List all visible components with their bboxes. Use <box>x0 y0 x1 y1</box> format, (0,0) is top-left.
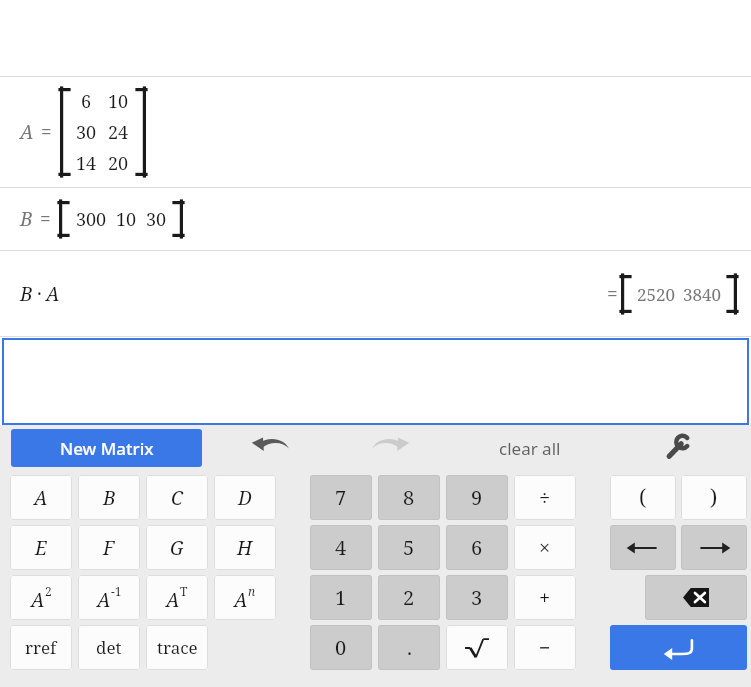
staticText: T <box>180 583 188 599</box>
button[interactable]: 8 <box>378 475 440 520</box>
button[interactable]: . <box>378 625 440 670</box>
button[interactable]: ÷ <box>514 475 576 520</box>
staticText: 9 <box>471 484 483 511</box>
button[interactable]: 9 <box>446 475 508 520</box>
button[interactable]: Settings <box>650 429 704 467</box>
staticText: 1 <box>335 584 347 611</box>
staticText: det <box>96 636 122 659</box>
staticText: A <box>234 587 248 613</box>
button[interactable]: clear all <box>470 429 590 467</box>
button[interactable]: Redo <box>362 429 418 467</box>
button[interactable]: Move left <box>610 525 676 570</box>
button[interactable]: rref <box>10 625 72 670</box>
staticText: -1 <box>111 583 122 599</box>
button[interactable]: det <box>78 625 140 670</box>
button[interactable]: A <box>10 475 72 520</box>
button[interactable]: 3 <box>446 575 508 620</box>
staticText: 4 <box>335 534 347 561</box>
staticText: B <box>103 485 116 511</box>
staticText: 30 <box>76 120 97 145</box>
button[interactable]: 0 <box>310 625 372 670</box>
button[interactable]: ) <box>681 475 747 520</box>
button[interactable]: F <box>78 525 140 570</box>
staticText: + <box>539 584 551 611</box>
staticText: . <box>407 634 412 661</box>
staticText: New Matrix <box>60 437 154 460</box>
staticText: 14 <box>76 151 97 176</box>
button[interactable]: 6 <box>446 525 508 570</box>
button[interactable]: A <box>78 575 140 620</box>
button[interactable]: C <box>146 475 208 520</box>
staticText: 24 <box>108 120 129 145</box>
staticText: D <box>238 485 252 511</box>
button[interactable]: Undo <box>243 429 299 467</box>
staticText: 0 <box>335 634 347 661</box>
staticText: 10 <box>108 89 129 114</box>
staticText: ( <box>639 483 647 512</box>
staticText: A <box>46 281 60 307</box>
staticText: 5 <box>403 534 415 561</box>
button[interactable]: trace <box>146 625 208 670</box>
staticText: = <box>40 206 51 232</box>
staticText: = <box>41 119 52 145</box>
staticText: H <box>237 535 253 561</box>
staticText: F <box>103 535 115 561</box>
button[interactable]: 2 <box>378 575 440 620</box>
staticText: 3 <box>471 584 483 611</box>
staticText: n <box>248 583 256 599</box>
staticText: ÷ <box>539 484 551 511</box>
staticText: 10 <box>116 207 137 232</box>
button[interactable]: Move right <box>681 525 747 570</box>
staticText: 6 <box>81 89 92 114</box>
button[interactable]: 5 <box>378 525 440 570</box>
staticText: A <box>20 119 34 145</box>
staticText: 30 <box>146 207 167 232</box>
staticText: C <box>171 485 183 511</box>
button[interactable]: Square root <box>446 625 508 670</box>
staticText: − <box>539 634 551 661</box>
staticText: 300 <box>76 207 107 232</box>
button[interactable]: G <box>146 525 208 570</box>
button[interactable]: 1 <box>310 575 372 620</box>
button[interactable]: Backspace <box>645 575 747 620</box>
button[interactable]: D <box>214 475 276 520</box>
staticText: ) <box>710 483 718 512</box>
button[interactable]: ( <box>610 475 676 520</box>
staticText: rref <box>25 636 57 659</box>
button[interactable]: A <box>10 575 72 620</box>
staticText: · <box>37 281 42 307</box>
button[interactable]: A <box>214 575 276 620</box>
button[interactable]: Enter <box>610 625 747 670</box>
staticText: 7 <box>335 484 347 511</box>
button[interactable]: H <box>214 525 276 570</box>
button[interactable]: B <box>78 475 140 520</box>
button[interactable]: 4 <box>310 525 372 570</box>
button[interactable]: + <box>514 575 576 620</box>
button[interactable]: New Matrix <box>11 429 202 467</box>
button[interactable]: 7 <box>310 475 372 520</box>
staticText: 2 <box>403 584 415 611</box>
staticText: A <box>31 587 45 613</box>
staticText: 6 <box>471 534 483 561</box>
staticText: B <box>20 206 33 232</box>
button[interactable]: × <box>514 525 576 570</box>
staticText: 2520 <box>637 283 676 306</box>
staticText: 20 <box>108 151 129 176</box>
staticText: A <box>34 485 48 511</box>
staticText: 3840 <box>683 283 722 306</box>
staticText: trace <box>157 636 198 659</box>
button[interactable]: A <box>146 575 208 620</box>
button[interactable]: E <box>10 525 72 570</box>
staticText: 8 <box>403 484 415 511</box>
staticText: 2 <box>45 583 52 599</box>
staticText: E <box>35 535 47 561</box>
staticText: clear all <box>499 437 561 460</box>
staticText: = <box>607 281 618 307</box>
staticText: B <box>20 281 33 307</box>
staticText: A <box>166 587 180 613</box>
staticText: G <box>170 535 184 561</box>
staticText: A <box>97 587 111 613</box>
staticText: × <box>539 534 551 561</box>
button[interactable]: − <box>514 625 576 670</box>
